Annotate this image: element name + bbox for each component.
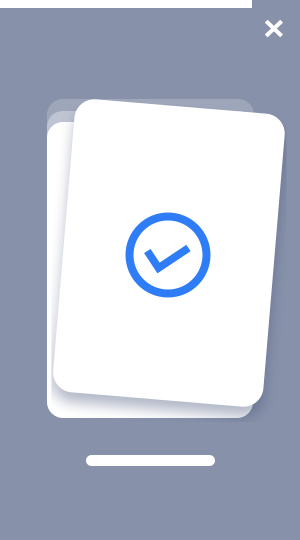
button[interactable]: Close — [253, 8, 295, 49]
